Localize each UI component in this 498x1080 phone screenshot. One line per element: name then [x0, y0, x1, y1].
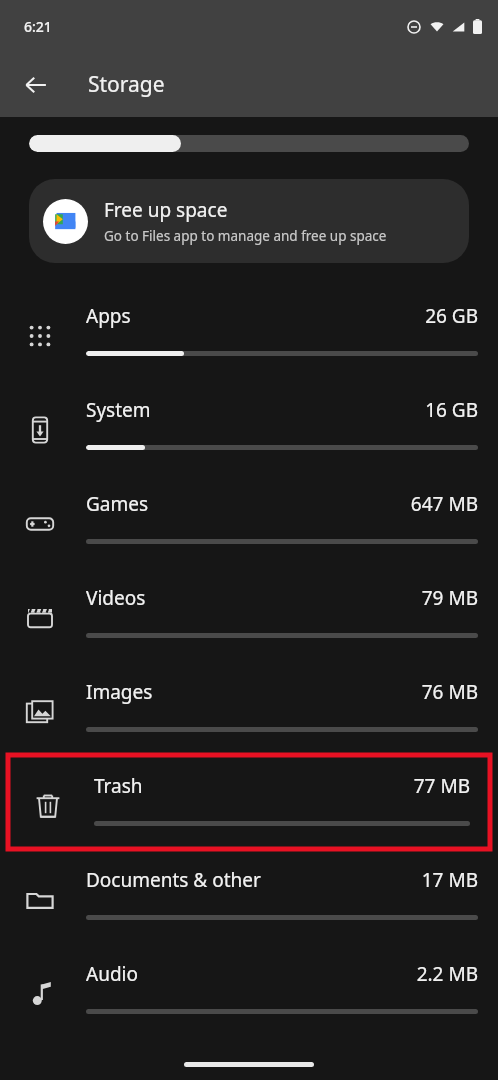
staticText: 26 GB [425, 303, 478, 329]
staticText: Games [86, 491, 410, 517]
staticText: Trash [94, 773, 413, 799]
button[interactable]: Videos [0, 567, 498, 661]
staticText: 77 MB [413, 773, 470, 799]
button[interactable]: Audio [0, 943, 498, 1037]
staticText: Documents & other [86, 867, 421, 893]
button[interactable]: System [0, 379, 498, 473]
staticText: Audio [86, 961, 416, 987]
staticText: 6:21 [24, 17, 52, 36]
staticText: System [86, 397, 425, 423]
staticText: Storage [88, 70, 165, 99]
staticText: Free up space [104, 197, 228, 223]
staticText: Apps [86, 303, 425, 329]
staticText: Go to Files app to manage and free up sp… [104, 227, 387, 245]
button[interactable]: Apps [0, 285, 498, 379]
staticText: 79 MB [421, 585, 478, 611]
button[interactable]: Images [0, 661, 498, 755]
staticText: 2.2 MB [416, 961, 478, 987]
staticText: 647 MB [410, 491, 478, 517]
staticText: 16 GB [425, 397, 478, 423]
button[interactable]: Documents & other [0, 849, 498, 943]
staticText: 17 MB [421, 867, 478, 893]
staticText: 76 MB [421, 679, 478, 705]
button[interactable]: Free up space [29, 179, 469, 263]
staticText: Videos [86, 585, 421, 611]
staticText: Images [86, 679, 421, 705]
button[interactable]: Trash [8, 755, 490, 849]
button[interactable]: Games [0, 473, 498, 567]
button[interactable]: Back [12, 61, 60, 109]
